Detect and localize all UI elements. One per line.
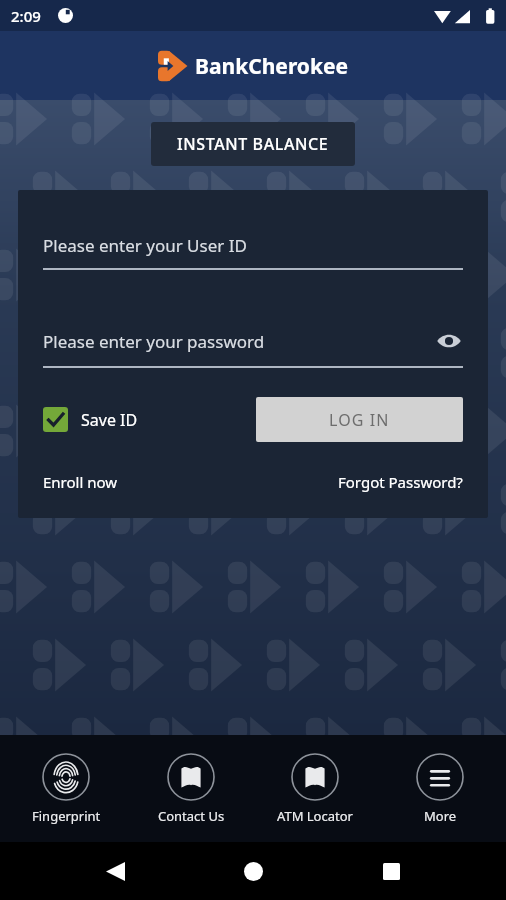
button[interactable]: Please enter your User ID (43, 234, 463, 270)
button[interactable]: ATM Locator (257, 749, 373, 829)
staticText: More (424, 807, 457, 825)
button[interactable]: Forgot Password? (338, 472, 463, 492)
staticText: ATM Locator (277, 807, 353, 825)
staticText: Please enter your User ID (43, 234, 247, 257)
staticText: 2:09 (11, 6, 41, 26)
staticText: Fingerprint (32, 807, 101, 825)
button[interactable]: Home (230, 848, 276, 894)
staticText: LOG IN (329, 409, 390, 431)
button[interactable]: Save ID (43, 407, 142, 432)
button[interactable]: INSTANT BALANCE (151, 122, 355, 166)
button[interactable]: Back (92, 848, 138, 894)
button[interactable]: Fingerprint login (8, 749, 124, 829)
staticText: Enroll now (43, 472, 118, 492)
staticText: BankCherokee (195, 52, 349, 81)
button[interactable]: More options (382, 749, 498, 829)
button[interactable]: Recents (368, 848, 414, 894)
button[interactable]: LOG IN (256, 397, 463, 442)
button[interactable]: Show password (435, 327, 463, 355)
button[interactable]: Enroll now (43, 472, 118, 492)
staticText: Save ID (81, 409, 138, 431)
staticText: Contact Us (158, 807, 225, 825)
staticText: Please enter your password (43, 330, 265, 353)
button[interactable]: Contact Us (133, 749, 249, 829)
staticText: INSTANT BALANCE (177, 133, 329, 155)
staticText: Forgot Password? (338, 472, 463, 492)
button[interactable]: Please enter your password (43, 327, 463, 368)
